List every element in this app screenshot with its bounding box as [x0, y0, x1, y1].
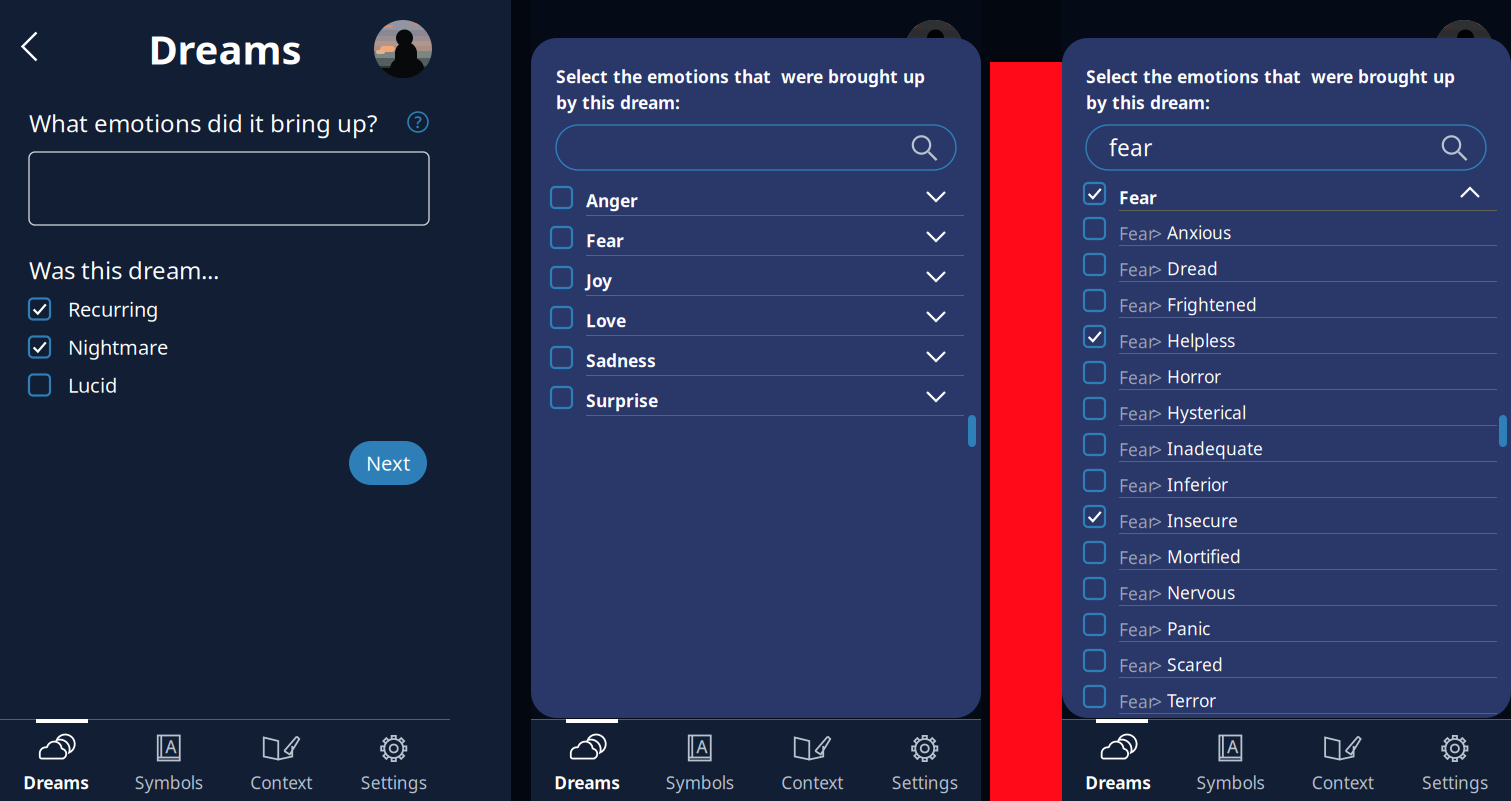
button[interactable]: Fear	[1084, 362, 1496, 398]
button[interactable]: A	[112, 725, 225, 801]
staticText: Terror	[1167, 689, 1216, 712]
button[interactable]: A	[1174, 725, 1286, 801]
button[interactable]: Fear	[1084, 254, 1496, 290]
staticText: Fear	[1119, 510, 1155, 533]
staticText: >	[1152, 366, 1162, 389]
button[interactable]: Nightmare	[29, 335, 229, 359]
staticText: Next	[366, 450, 410, 476]
button[interactable]: Back	[8, 23, 54, 73]
staticText: A	[1227, 735, 1238, 758]
staticText: >	[1152, 258, 1162, 281]
button[interactable]: Fear	[1084, 434, 1496, 470]
button[interactable]: Sadness	[551, 344, 961, 384]
staticText: >	[1152, 618, 1162, 641]
button[interactable]: Surprise	[551, 384, 961, 424]
button[interactable]: Fear	[1084, 398, 1496, 434]
staticText: Fear	[586, 229, 624, 252]
staticText: Fear	[1119, 222, 1155, 245]
button[interactable]: Settings	[868, 725, 981, 801]
button[interactable]: Fear	[1084, 182, 1496, 218]
staticText: Select the emotions that were brought up	[1086, 65, 1455, 88]
staticText: Symbols	[1196, 771, 1264, 794]
button[interactable]: Help	[401, 105, 435, 139]
staticText: Inferior	[1167, 473, 1228, 496]
staticText: Frightened	[1167, 293, 1257, 316]
staticText: >	[1152, 510, 1162, 533]
staticText: Anger	[586, 189, 638, 212]
staticText: Nervous	[1167, 581, 1235, 604]
button[interactable]: Context	[756, 725, 868, 801]
staticText: Was this dream...	[29, 254, 219, 286]
button[interactable]: Recurring	[29, 297, 229, 321]
staticText: Fear	[1119, 402, 1155, 425]
staticText: Context	[1312, 771, 1374, 794]
staticText: Horror	[1167, 365, 1221, 388]
staticText: >	[1152, 402, 1162, 425]
staticText: Symbols	[135, 771, 203, 794]
button[interactable]: Fear	[1084, 578, 1496, 614]
staticText: >	[1152, 474, 1162, 497]
button[interactable]: Fear	[1084, 326, 1496, 362]
staticText: Select the emotions that were brought up	[556, 65, 925, 88]
staticText: Fear	[1119, 330, 1155, 353]
staticText: Fear	[1119, 546, 1155, 569]
button[interactable]: Fear	[1084, 470, 1496, 506]
staticText: Fear	[1119, 366, 1155, 389]
staticText: Dread	[1167, 257, 1218, 280]
button[interactable]: Settings	[337, 725, 450, 801]
staticText: What emotions did it bring up?	[29, 107, 377, 139]
staticText: Settings	[892, 771, 958, 794]
staticText: Fear	[1119, 690, 1155, 713]
staticText: Love	[586, 309, 626, 332]
staticText: Fear	[1119, 258, 1155, 281]
button[interactable]: Dreams	[531, 725, 643, 801]
staticText: Inadequate	[1167, 437, 1263, 460]
button[interactable]: Profile	[374, 20, 432, 78]
button[interactable]: Fear	[1084, 614, 1496, 650]
staticText: >	[1152, 582, 1162, 605]
staticText: >	[1152, 546, 1162, 569]
staticText: A	[696, 735, 707, 758]
button[interactable]: Lucid	[29, 373, 229, 397]
staticText: Scared	[1167, 653, 1223, 676]
button[interactable]: Fear	[1084, 686, 1496, 722]
staticText: Recurring	[68, 296, 158, 322]
staticText: Hysterical	[1167, 401, 1246, 424]
staticText: Anxious	[1167, 221, 1231, 244]
staticText: Panic	[1167, 617, 1210, 640]
staticText: >	[1152, 330, 1162, 353]
button[interactable]: Context	[1286, 725, 1399, 801]
button[interactable]: Settings	[1399, 725, 1511, 801]
staticText: Insecure	[1167, 509, 1238, 532]
button[interactable]: Fear	[1084, 506, 1496, 542]
staticText: Settings	[361, 771, 427, 794]
button[interactable]: Dreams	[0, 725, 112, 801]
button[interactable]: Dreams	[1062, 725, 1174, 801]
staticText: >	[1152, 690, 1162, 713]
button[interactable]: Fear	[1084, 218, 1496, 254]
staticText: Sadness	[586, 349, 656, 372]
staticText: by this dream:	[556, 91, 680, 114]
staticText: >	[1152, 222, 1162, 245]
staticText: Dreams	[554, 771, 620, 794]
button[interactable]: Love	[551, 304, 961, 344]
staticText: fear	[1109, 132, 1152, 162]
button[interactable]: A	[643, 725, 756, 801]
staticText: Context	[250, 771, 312, 794]
button[interactable]: Fear	[551, 224, 961, 264]
staticText: Joy	[586, 269, 612, 292]
staticText: Nightmare	[68, 334, 168, 360]
staticText: Fear	[1119, 438, 1155, 461]
button[interactable]: Fear	[1084, 290, 1496, 326]
button[interactable]: Joy	[551, 264, 961, 304]
staticText: ?	[414, 111, 421, 133]
button[interactable]: Fear	[1084, 650, 1496, 686]
staticText: Helpless	[1167, 329, 1235, 352]
button[interactable]: Next	[349, 441, 427, 485]
staticText: Context	[781, 771, 843, 794]
button[interactable]: Context	[225, 725, 337, 801]
staticText: Surprise	[586, 389, 658, 412]
staticText: >	[1152, 654, 1162, 677]
button[interactable]: Fear	[1084, 542, 1496, 578]
button[interactable]: Anger	[551, 184, 961, 224]
